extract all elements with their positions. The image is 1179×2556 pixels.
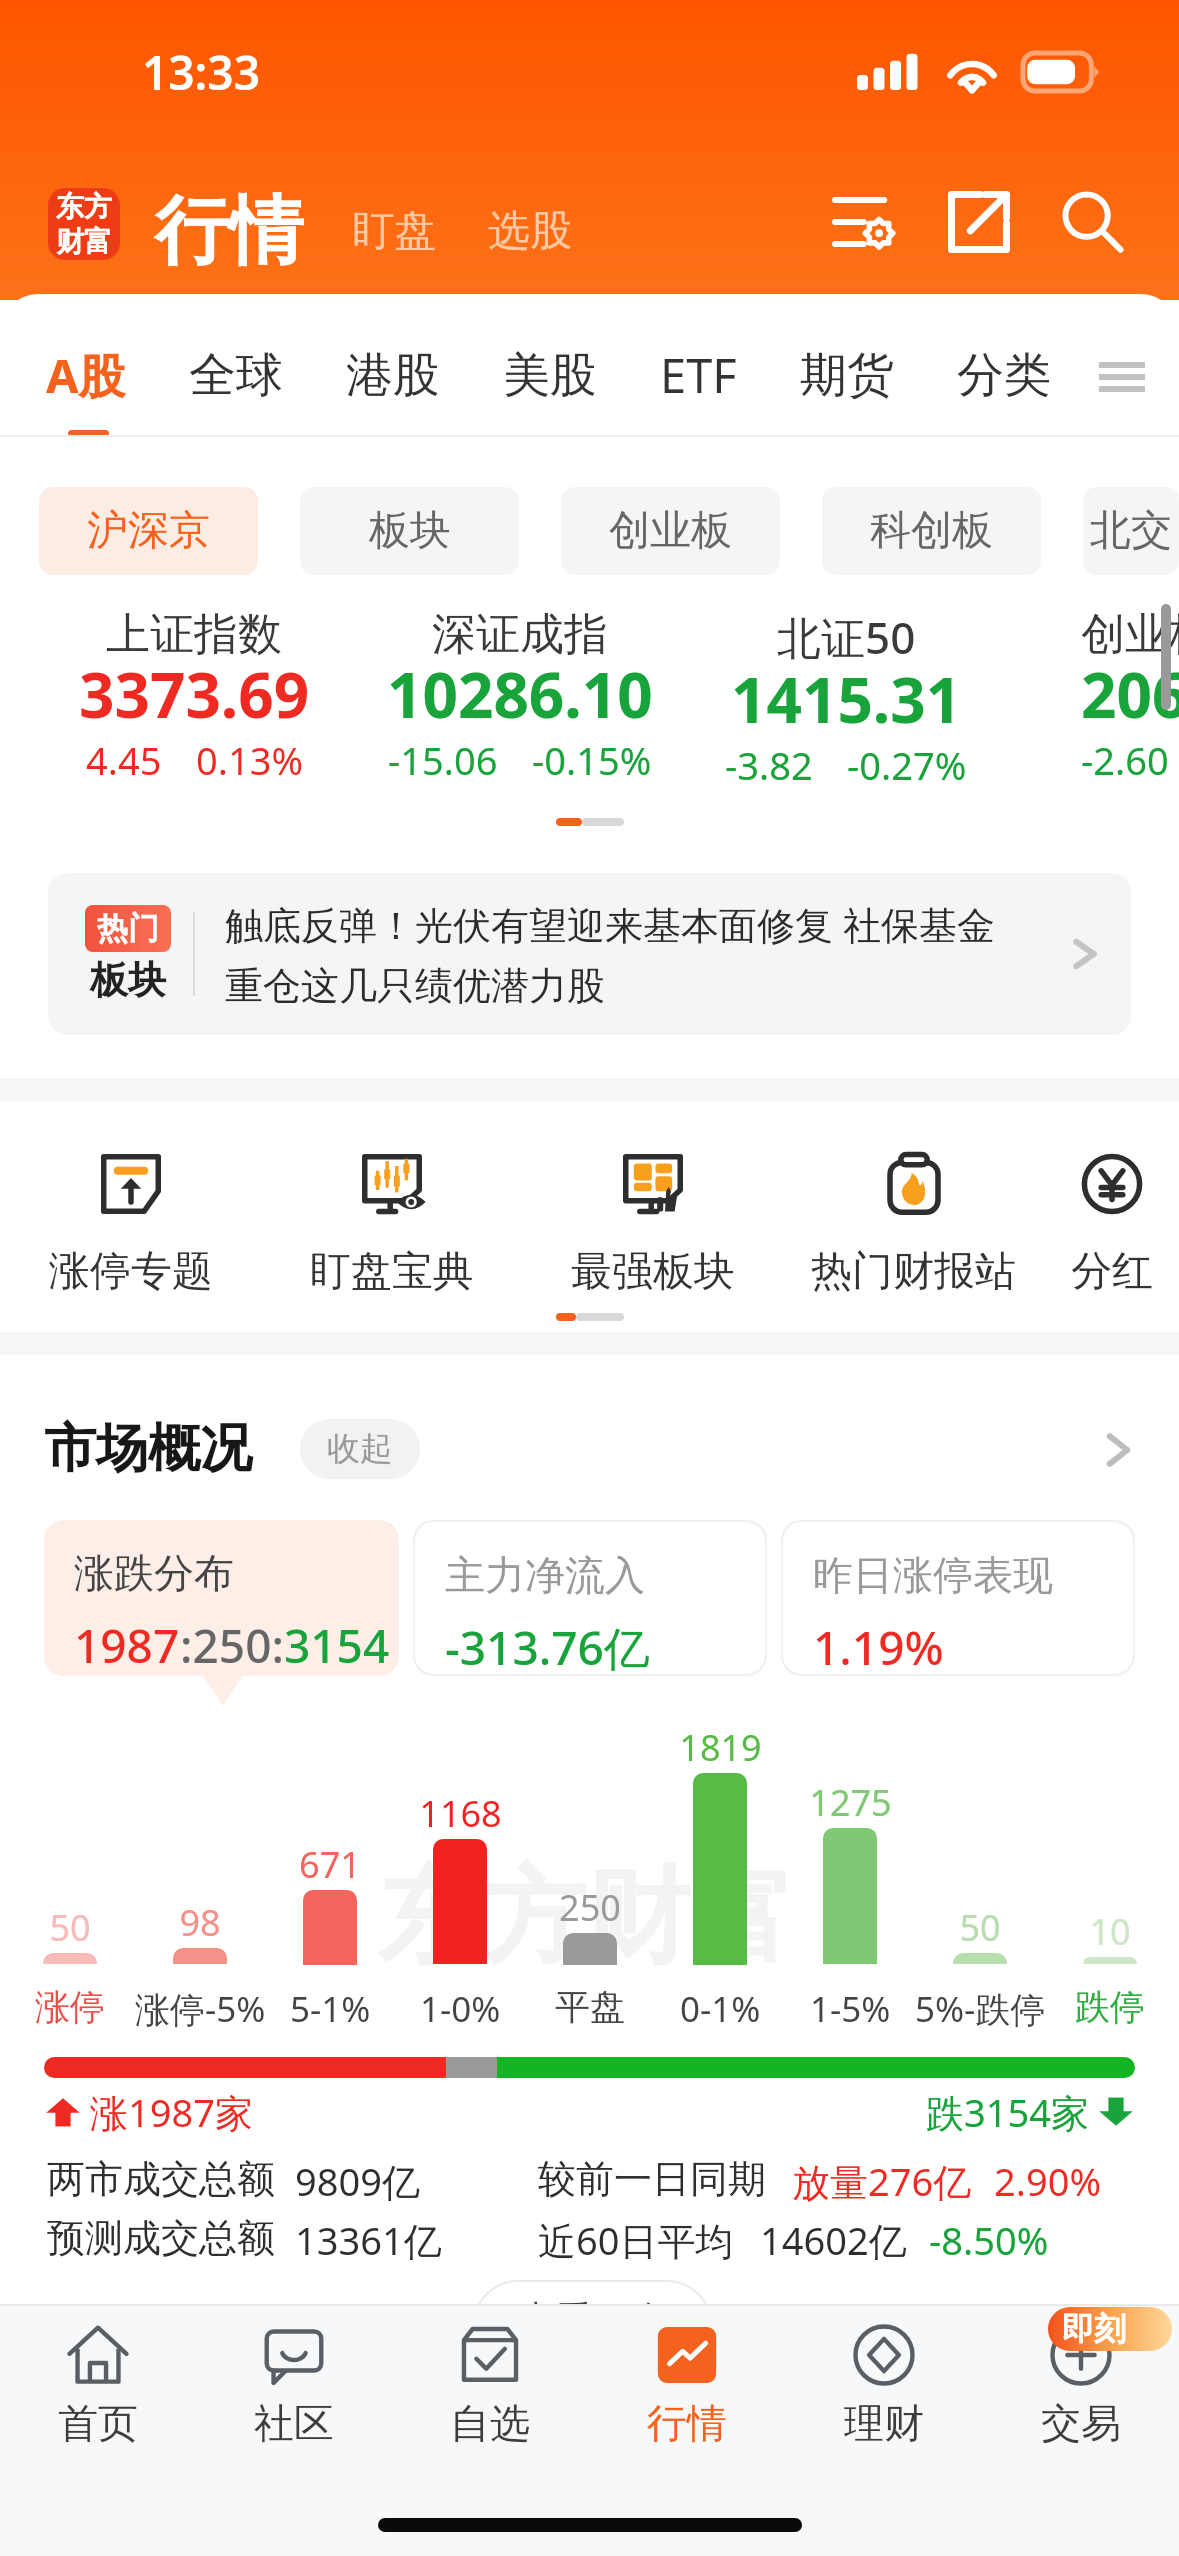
staticText: 东方财富 [378,1852,794,1983]
staticText: 涨1987家 [90,2086,253,2138]
button[interactable]: 北交 [1083,487,1179,575]
staticText: 昨日涨停表现 [813,1550,1053,1600]
staticText: -2.60 [1081,734,1169,786]
staticText: 东方 [56,189,112,224]
button[interactable]: 分红 [1044,1154,1179,1298]
staticText: 板块 [90,956,166,1004]
staticText: 全球 [189,346,283,405]
button[interactable]: 涨停专题 [0,1154,261,1298]
button[interactable]: 选股 [488,205,572,258]
staticText: 财富 [56,224,112,259]
button[interactable]: 热门 [48,873,1131,1035]
staticText: -313.76亿 [445,1616,650,1674]
staticText: 美股 [503,346,597,405]
staticText: 分类 [957,346,1051,405]
staticText: 0.13% [196,734,303,786]
staticText: 4.45 [86,734,162,786]
staticText: 主力净流入 [445,1550,645,1600]
button[interactable]: Search [1049,178,1137,266]
staticText: 创业板 [609,505,732,557]
button[interactable]: 最强板块 [522,1154,783,1298]
staticText: 热门财报站 [811,1246,1016,1298]
staticText: 1819 [679,1723,762,1772]
button[interactable]: 全球 [189,346,346,405]
button[interactable]: 热门财报站 [783,1154,1044,1298]
staticText: 2.90% [994,2155,1101,2207]
staticText: 50 [959,1903,1001,1952]
staticText: 社区 [254,2398,334,2448]
staticText: ETF [660,343,737,407]
staticText: A股 [46,343,126,407]
button[interactable]: 收起 [300,1419,420,1479]
button[interactable]: 板块 [300,487,519,575]
staticText: 1168 [419,1789,502,1838]
button[interactable]: A股 [46,343,189,407]
staticText: 近60日平均 [538,2214,734,2266]
button[interactable]: 查看更多 [475,2282,710,2368]
staticText: 10286.10 [387,652,653,736]
button[interactable]: Share [935,178,1023,266]
button[interactable]: 期货 [800,346,957,405]
button[interactable]: 沪深京 [39,487,258,575]
button[interactable]: 自选 [392,2322,588,2448]
staticText: 跌停 [1075,1985,1145,2029]
staticText: 深证成指 [432,607,608,662]
staticText: 14602亿 [760,2214,907,2266]
staticText: 理财 [844,2398,924,2448]
staticText: 9809亿 [295,2155,420,2207]
staticText: 671 [299,1840,361,1889]
staticText: 250 [559,1883,621,1932]
button[interactable]: 分类 [957,346,1051,405]
staticText: 即刻 [1062,2309,1126,2349]
staticText: 放量276亿 [792,2155,972,2207]
staticText: 沪深京 [87,505,210,557]
staticText: 预测成交总额 [47,2214,275,2262]
staticText: 3373.69 [79,652,310,736]
button[interactable]: 涨跌分布 [44,1520,399,1676]
staticText: 触底反弹！光伏有望迎来基本面修复 社保基金 [225,898,995,950]
button[interactable]: 港股 [346,346,503,405]
button[interactable]: 主力净流入 [415,1522,765,1674]
button[interactable]: 行情 [588,2322,785,2448]
staticText: 10 [1089,1907,1131,1956]
staticText: -0.15% [532,734,652,786]
button[interactable]: 盯盘宝典 [261,1154,522,1298]
staticText: 上证指数 [106,607,282,662]
button[interactable]: 昨日涨停表现 [783,1522,1133,1674]
staticText: 两市成交总额 [47,2155,275,2203]
button[interactable]: More tabs [1087,342,1157,412]
button[interactable]: 盯盘 [352,205,436,258]
staticText: 13:33 [142,41,260,104]
staticText: 交易 [1041,2398,1121,2448]
button[interactable]: 科创板 [822,487,1041,575]
staticText: :250: [180,1614,284,1676]
staticText: 98 [179,1898,221,1947]
staticText: 盯盘宝典 [310,1246,474,1298]
button[interactable]: 创业板 [561,487,780,575]
staticText: 查看更多 [517,2296,669,2344]
button[interactable]: More market info [1090,1422,1146,1478]
staticText: 分红 [1071,1246,1153,1298]
staticText: -15.06 [388,734,498,786]
staticText: 较前一日同期 [538,2155,766,2203]
button[interactable]: 首页 [0,2322,196,2448]
button[interactable]: 交易 [982,2322,1179,2448]
staticText: 自选 [450,2398,530,2448]
staticText: 行情 [155,185,303,278]
button[interactable]: 美股 [503,346,660,405]
staticText: 50 [49,1903,91,1952]
staticText: 重仓这几只绩优潜力股 [225,962,605,1010]
staticText: 0-1% [680,1985,761,2033]
staticText: 选股 [488,205,572,258]
staticText: -0.27% [847,739,967,791]
button[interactable]: Filter settings [821,178,909,266]
staticText: 1987 [74,1614,180,1676]
staticText: 平盘 [555,1985,625,2029]
button[interactable]: 理财 [785,2322,982,2448]
button[interactable]: ETF [660,343,800,407]
staticText: 2062.84 [1081,652,1179,736]
staticText: 涨停-5% [135,1985,265,2033]
staticText: -8.50% [929,2214,1049,2266]
button[interactable]: 社区 [196,2322,392,2448]
staticText: 行情 [647,2398,727,2448]
